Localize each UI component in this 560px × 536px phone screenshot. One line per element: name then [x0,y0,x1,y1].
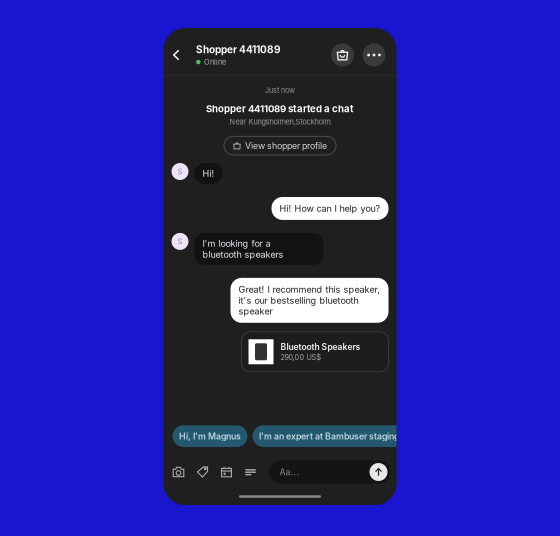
staticText: I'm an expert at Bambuser staging [259,431,399,441]
staticText: S [177,167,182,176]
button[interactable]: Aa... [269,460,390,484]
staticText: S [177,237,182,246]
staticText: Bluetooth Speakers [280,342,360,352]
button[interactable]: Bluetooth Speakers [241,332,388,372]
staticText: Shopper 4411089 started a chat [206,103,354,114]
staticText: 290,00 US$ [280,353,321,362]
staticText: Hi! [202,168,214,179]
button[interactable]: Shop [331,43,354,66]
button[interactable]: More options [362,43,385,66]
button[interactable]: Calendar [220,466,232,478]
staticText: Aa... [279,467,299,477]
button[interactable]: Tag [196,466,208,478]
staticText: Great! I recommend this speaker, it's ou… [238,284,380,317]
button[interactable]: Hi, I'm Magnus [172,425,247,447]
staticText: Just now [265,86,295,95]
button[interactable]: View shopper profile [224,136,336,155]
staticText: Shopper 4411089 [196,43,280,56]
staticText: I'm looking for a bluetooth speakers [202,238,283,260]
staticText: Online [204,58,226,66]
staticText: Hi! How can I help you? [279,203,380,214]
button[interactable]: Back [173,42,194,68]
button[interactable]: I'm an expert at Bambuser staging [252,425,405,447]
staticText: View shopper profile [245,140,327,151]
staticText: Near Kungsholmen,Stockholm [229,117,330,126]
staticText: Hi, I'm Magnus [179,431,241,441]
button[interactable]: Camera [172,466,184,478]
button[interactable]: Quick replies [244,466,256,478]
